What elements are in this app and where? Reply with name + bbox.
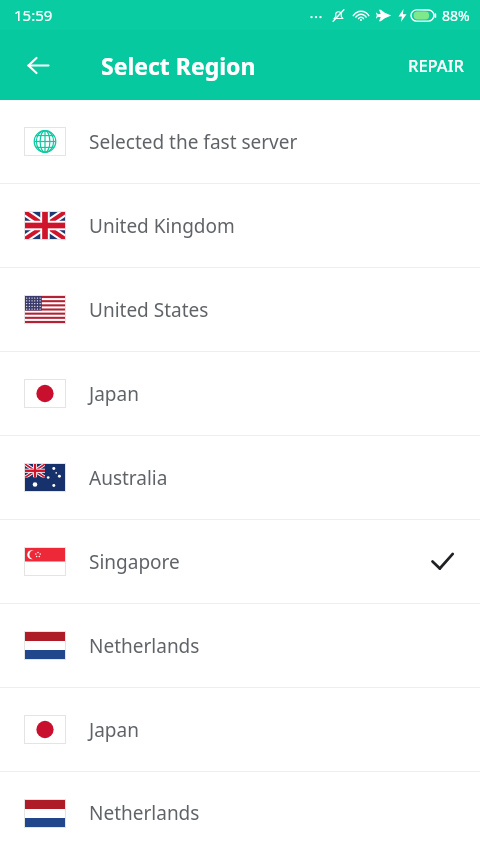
staticText: Japan — [89, 381, 139, 407]
staticText: Netherlands — [89, 633, 200, 659]
button[interactable]: Netherlands — [0, 772, 480, 854]
staticText: Singapore — [89, 549, 180, 575]
button[interactable]: United States — [0, 268, 480, 351]
staticText: REPAIR — [408, 54, 464, 76]
button[interactable]: United Kingdom — [0, 184, 480, 267]
staticText: 88% — [442, 6, 470, 25]
button[interactable]: Japan — [0, 688, 480, 771]
button[interactable]: Netherlands — [0, 604, 480, 687]
button[interactable]: Back — [10, 37, 66, 93]
staticText: Selected the fast server — [89, 129, 298, 155]
staticText: Australia — [89, 465, 168, 491]
staticText: Select Region — [101, 50, 256, 81]
staticText: United States — [89, 297, 209, 323]
button[interactable]: REPAIR — [392, 30, 480, 100]
button[interactable]: Singapore — [0, 520, 480, 603]
staticText: 15:59 — [14, 5, 53, 25]
button[interactable]: Japan — [0, 352, 480, 435]
button[interactable]: Selected the fast server — [0, 100, 480, 183]
staticText: United Kingdom — [89, 213, 235, 239]
button[interactable]: Australia — [0, 436, 480, 519]
staticText: Netherlands — [89, 800, 200, 826]
staticText: Japan — [89, 717, 139, 743]
